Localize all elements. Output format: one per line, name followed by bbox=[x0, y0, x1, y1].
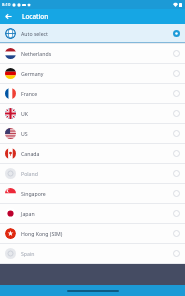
staticText: Poland bbox=[21, 170, 173, 177]
button[interactable]: Germany bbox=[0, 64, 185, 83]
button[interactable]: Canada bbox=[0, 144, 185, 163]
staticText: France bbox=[21, 90, 173, 97]
staticText: UK bbox=[21, 110, 173, 117]
button[interactable]: Back bbox=[0, 9, 16, 24]
staticText: Canada bbox=[21, 150, 173, 157]
staticText: Netherlands bbox=[21, 50, 173, 57]
staticText: Germany bbox=[21, 70, 173, 77]
button[interactable]: US bbox=[0, 124, 185, 143]
staticText: Spain bbox=[21, 250, 173, 257]
staticText: Japan bbox=[21, 210, 173, 217]
staticText: Singapore bbox=[21, 190, 173, 197]
button[interactable]: Japan bbox=[0, 204, 185, 223]
button[interactable]: France bbox=[0, 84, 185, 103]
button[interactable]: Spain bbox=[0, 244, 185, 263]
button[interactable]: Netherlands bbox=[0, 44, 185, 63]
button[interactable]: Hong Kong (SIM) bbox=[0, 224, 185, 243]
staticText: Hong Kong (SIM) bbox=[21, 230, 173, 237]
staticText: 8:10 bbox=[2, 2, 11, 8]
staticText: Auto select bbox=[21, 30, 173, 37]
button[interactable]: Auto select bbox=[0, 24, 185, 43]
button[interactable]: Singapore bbox=[0, 184, 185, 203]
staticText: Location bbox=[22, 12, 49, 21]
button[interactable]: UK bbox=[0, 104, 185, 123]
button[interactable]: Poland bbox=[0, 164, 185, 183]
staticText: US bbox=[21, 130, 173, 137]
